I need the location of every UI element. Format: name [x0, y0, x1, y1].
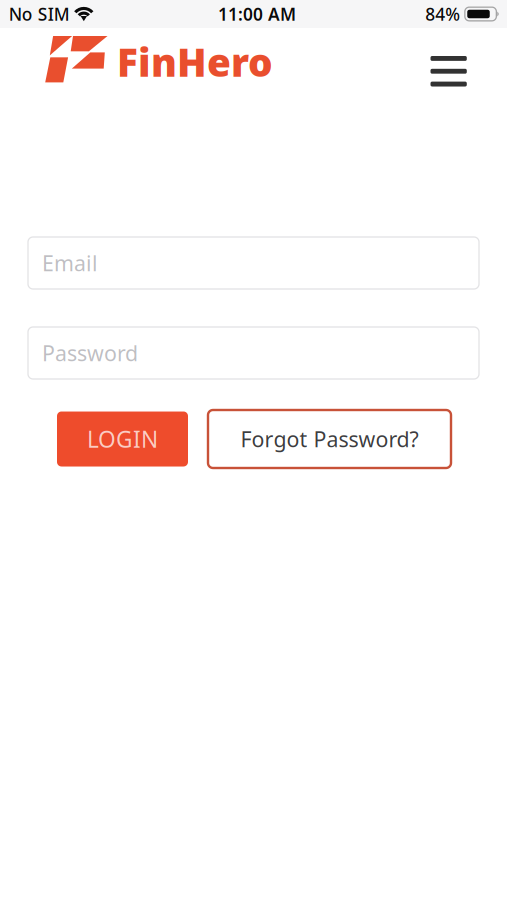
staticText: LOGIN	[87, 424, 158, 454]
button[interactable]: Menu	[416, 44, 481, 98]
staticText: No SIM	[9, 2, 70, 25]
staticText: 84%	[425, 2, 460, 25]
staticText: FinHero	[117, 36, 273, 87]
staticText: Email	[42, 249, 98, 277]
button[interactable]: LOGIN	[57, 411, 188, 466]
staticText: Forgot Password?	[240, 425, 418, 453]
staticText: Password	[42, 339, 138, 367]
staticText: 11:00 AM	[218, 2, 296, 25]
button[interactable]: Forgot Password?	[208, 410, 451, 468]
